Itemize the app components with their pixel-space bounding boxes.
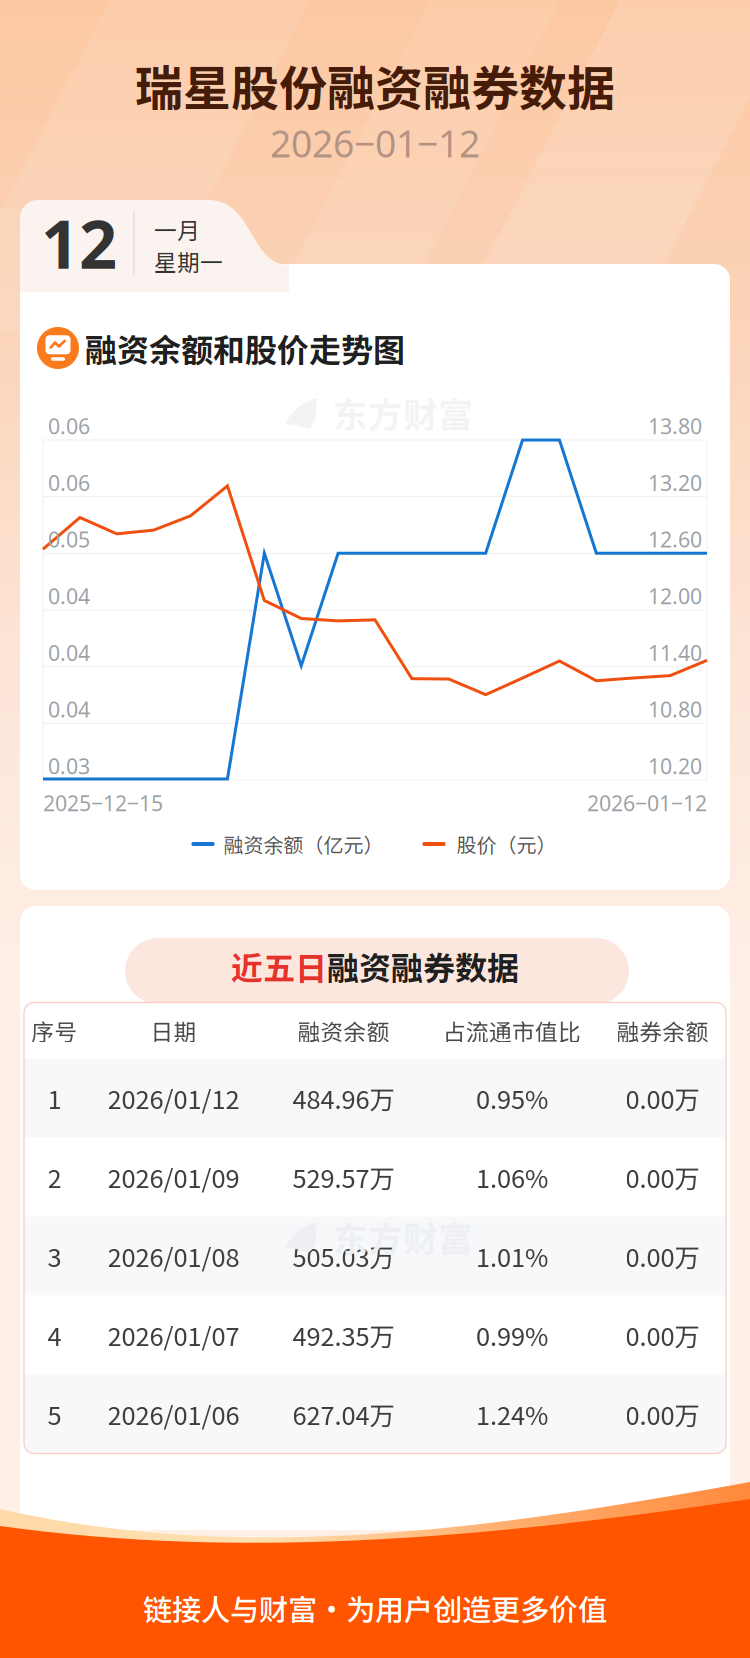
staticText: 融券余额: [616, 1014, 708, 1047]
staticText: 0.00万: [625, 1317, 699, 1353]
staticText: 1: [47, 1080, 61, 1116]
staticText: 2: [47, 1159, 61, 1195]
staticText: 0.99%: [476, 1317, 548, 1353]
staticText: 融资余额和股价走势图: [85, 325, 405, 371]
staticText: 0.00万: [625, 1159, 699, 1195]
staticText: 序号: [31, 1014, 77, 1047]
staticText: 近五日: [231, 943, 327, 989]
staticText: 12.00: [648, 581, 702, 611]
staticText: 13.20: [648, 468, 702, 497]
staticText: 2026−01−12: [587, 788, 707, 818]
staticText: 12.60: [648, 525, 702, 554]
staticText: 一月: [154, 213, 200, 245]
staticText: 10.20: [648, 751, 702, 781]
staticText: 0.04: [48, 638, 90, 667]
staticText: 5: [47, 1396, 61, 1432]
staticText: 链接人与财富·为用户创造更多价值: [143, 1587, 607, 1629]
staticText: 1.01%: [476, 1238, 548, 1274]
staticText: 0.95%: [476, 1080, 548, 1116]
staticText: 1.24%: [476, 1396, 548, 1432]
staticText: 12: [41, 198, 117, 288]
staticText: 瑞星股份融资融券数据: [135, 50, 615, 120]
staticText: 日期: [150, 1014, 196, 1047]
staticText: 0.00万: [625, 1080, 699, 1116]
staticText: 融资融券数据: [327, 943, 519, 989]
staticText: 505.03万: [292, 1238, 394, 1274]
staticText: 0.06: [48, 411, 90, 441]
staticText: 2026−01−12: [270, 118, 480, 168]
staticText: 1.06%: [476, 1159, 548, 1195]
staticText: 3: [47, 1238, 61, 1274]
staticText: 2026/01/07: [107, 1317, 239, 1353]
staticText: 2026/01/12: [107, 1080, 239, 1116]
staticText: 星期一: [154, 245, 223, 277]
staticText: 627.04万: [292, 1396, 394, 1432]
staticText: 484.96万: [292, 1080, 394, 1116]
staticText: 13.80: [648, 411, 702, 441]
staticText: 2026/01/09: [107, 1159, 239, 1195]
staticText: 占流通市值比: [443, 1014, 581, 1047]
staticText: 0.06: [48, 468, 90, 497]
staticText: 融资余额（亿元）: [223, 829, 383, 858]
staticText: 0.00万: [625, 1238, 699, 1274]
staticText: 0.04: [48, 695, 90, 724]
staticText: 0.05: [48, 525, 90, 554]
staticText: 东方财富: [333, 388, 473, 438]
staticText: 股价（元）: [456, 829, 556, 858]
staticText: 0.03: [48, 751, 90, 781]
staticText: 2026/01/06: [107, 1396, 239, 1432]
staticText: 2025−12−15: [43, 788, 163, 818]
staticText: 4: [47, 1317, 61, 1353]
staticText: 11.40: [648, 638, 702, 667]
staticText: 0.04: [48, 581, 90, 611]
staticText: 2026/01/08: [107, 1238, 239, 1274]
staticText: 529.57万: [292, 1159, 394, 1195]
staticText: 0.00万: [625, 1396, 699, 1432]
staticText: 10.80: [648, 695, 702, 724]
staticText: 融资余额: [297, 1014, 389, 1047]
staticText: 492.35万: [292, 1317, 394, 1353]
staticText: 东方财富: [333, 1212, 473, 1262]
